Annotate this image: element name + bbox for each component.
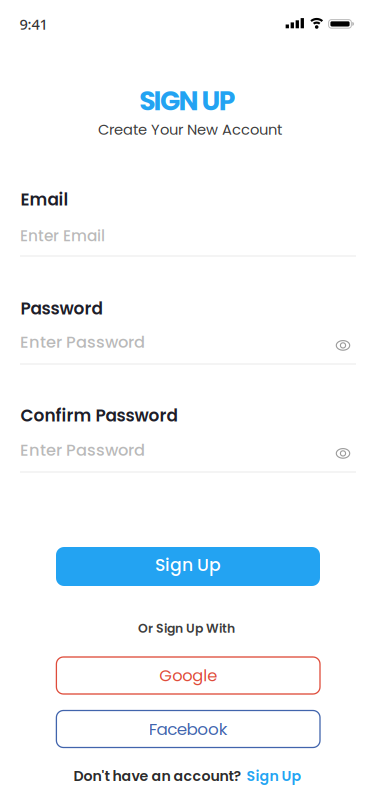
- button[interactable]: Facebook: [56, 710, 320, 747]
- staticText: Password: [20, 297, 102, 320]
- staticText: Sign Up: [246, 766, 301, 786]
- staticText: SIGN UP: [139, 82, 236, 120]
- staticText: Don't have an account?: [73, 766, 241, 786]
- staticText: Google: [159, 664, 217, 687]
- button[interactable]: Sign Up: [246, 766, 301, 786]
- staticText: Create Your New Account: [98, 119, 282, 140]
- staticText: Sign Up: [155, 553, 221, 577]
- staticText: Email: [20, 188, 68, 211]
- button[interactable]: Google: [56, 657, 320, 694]
- button[interactable]: Show password: [335, 447, 351, 459]
- staticText: Enter Password: [20, 439, 145, 461]
- staticText: Facebook: [149, 717, 228, 741]
- staticText: 9:41: [19, 14, 47, 34]
- staticText: Enter Password: [20, 331, 145, 353]
- button[interactable]: Sign Up: [56, 547, 320, 586]
- button[interactable]: Show password: [335, 339, 351, 351]
- staticText: Or Sign Up With: [138, 620, 235, 637]
- staticText: Confirm Password: [20, 404, 177, 427]
- staticText: Enter Email: [20, 225, 105, 247]
